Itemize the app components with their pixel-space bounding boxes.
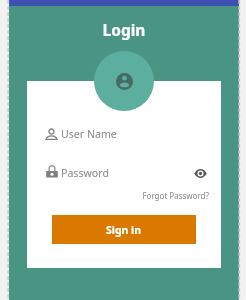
staticText: Password xyxy=(61,166,109,180)
staticText: Sign in xyxy=(106,223,142,237)
button[interactable]: Show password xyxy=(192,165,208,181)
button[interactable]: Forgot Password? xyxy=(129,190,209,201)
staticText: Login xyxy=(9,19,239,40)
button[interactable]: Account avatar xyxy=(94,51,154,111)
button[interactable]: Sign in xyxy=(52,215,196,244)
staticText: User Name xyxy=(61,127,117,141)
